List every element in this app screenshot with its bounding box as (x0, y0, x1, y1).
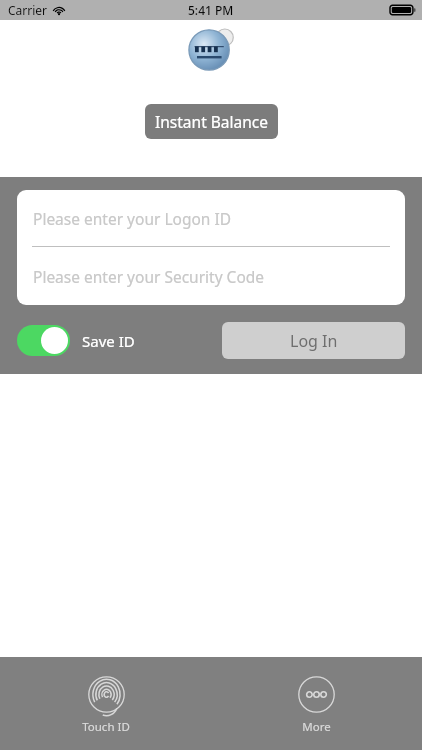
button[interactable]: Log In (222, 322, 405, 359)
staticText: Save ID (82, 331, 135, 351)
button[interactable]: Touch ID (70, 674, 142, 737)
button[interactable]: Please enter your Security Code (17, 247, 405, 305)
button[interactable]: Save ID (17, 325, 135, 356)
button[interactable]: Please enter your Logon ID (17, 190, 405, 247)
button[interactable]: More (286, 674, 347, 737)
staticText: Please enter your Security Code (33, 266, 265, 287)
staticText: More (302, 719, 331, 735)
staticText: Touch ID (82, 719, 130, 735)
staticText: Instant Balance (155, 111, 268, 132)
button[interactable]: Instant Balance (145, 104, 278, 139)
staticText: 5:41 PM (188, 2, 234, 18)
staticText: Log In (290, 330, 338, 352)
staticText: Carrier (8, 2, 48, 18)
staticText: Please enter your Logon ID (33, 208, 231, 229)
